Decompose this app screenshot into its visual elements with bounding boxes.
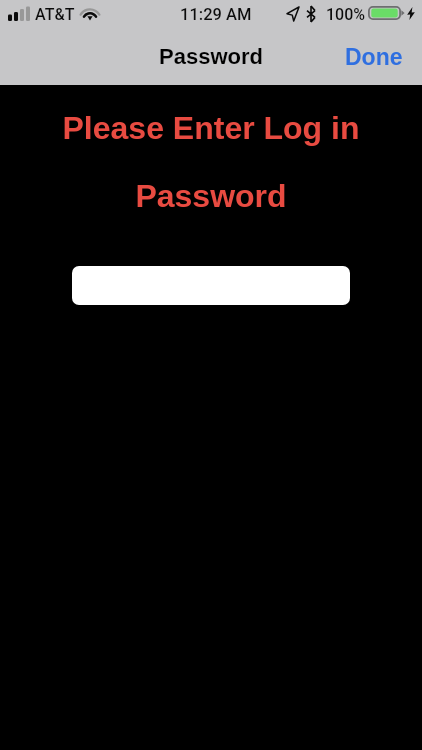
- staticText: 100%: [326, 5, 366, 24]
- staticText: Password: [159, 44, 263, 69]
- staticText: Done: [345, 44, 403, 70]
- staticText: AT&T: [35, 5, 75, 24]
- staticText: Password: [0, 178, 422, 214]
- staticText: 11:29 AM: [180, 5, 252, 24]
- staticText: Please Enter Log in: [0, 110, 422, 146]
- button[interactable]: Done: [327, 36, 422, 78]
- button[interactable]: Password text field: [72, 266, 350, 305]
